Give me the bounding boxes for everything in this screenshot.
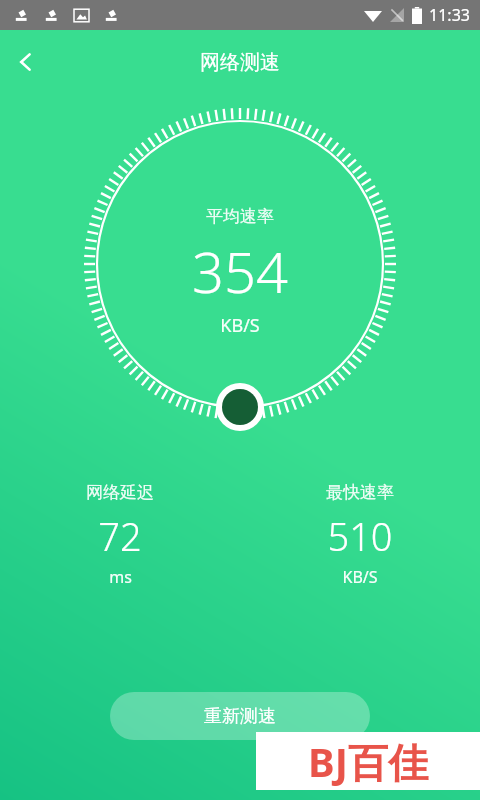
staticText: 网络延迟: [86, 482, 154, 503]
button[interactable]: Back: [0, 36, 52, 88]
staticText: 平均速率: [206, 206, 274, 227]
button[interactable]: 重新测速: [110, 692, 370, 740]
staticText: 最快速率: [326, 482, 394, 503]
staticText: 510: [327, 510, 393, 562]
staticText: KB/S: [220, 313, 260, 338]
staticText: 11:33: [429, 4, 470, 26]
staticText: BJ百佳: [308, 734, 428, 789]
staticText: 354: [192, 233, 288, 309]
staticText: KB/S: [342, 566, 378, 588]
staticText: 72: [98, 510, 142, 562]
staticText: 网络测速: [200, 50, 280, 75]
staticText: ms: [109, 566, 132, 588]
staticText: 重新测速: [204, 705, 276, 728]
